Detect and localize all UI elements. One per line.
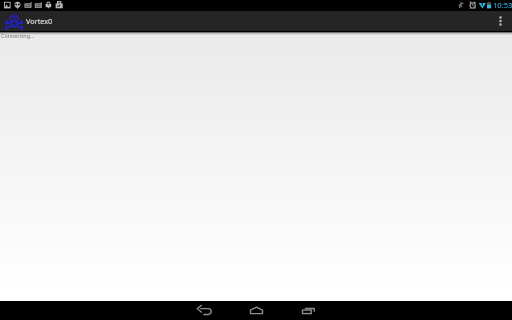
staticText: 10:53 bbox=[493, 0, 512, 10]
staticText: Vortex0 bbox=[26, 16, 53, 26]
button[interactable]: More options bbox=[489, 11, 512, 31]
button[interactable]: Home bbox=[231, 301, 281, 320]
staticText: Connecting... bbox=[1, 32, 35, 39]
button[interactable]: Back bbox=[180, 301, 230, 320]
button[interactable]: Recent apps bbox=[283, 301, 333, 320]
